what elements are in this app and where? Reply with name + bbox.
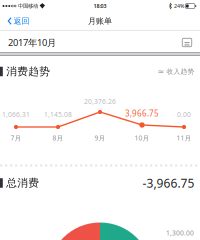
button[interactable]: 返回: [0, 12, 35, 30]
staticText: 3,966.75: [125, 108, 159, 119]
staticText: 收入趋势: [166, 67, 194, 76]
staticText: 18:03: [93, 2, 106, 10]
staticText: 9月: [94, 134, 105, 142]
staticText: -3,966.75: [142, 175, 194, 191]
staticText: 7月: [10, 134, 21, 142]
staticText: 1,066.31: [2, 110, 30, 119]
staticText: 总消费: [6, 176, 39, 189]
staticText: 2017年10月: [8, 36, 56, 49]
staticText: 1,300.00: [166, 229, 194, 237]
staticText: 8月: [52, 134, 63, 142]
button[interactable]: Pick month: [179, 35, 195, 49]
staticText: 24%: [174, 2, 184, 10]
staticText: 20,376.26: [84, 97, 116, 106]
staticText: 0.00: [177, 110, 191, 119]
staticText: 10月: [134, 134, 149, 142]
staticText: 月账单: [88, 16, 112, 26]
staticText: 中国移动: [16, 3, 38, 9]
staticText: 返回: [13, 16, 29, 26]
staticText: 1,145.08: [44, 110, 72, 119]
staticText: ≈: [157, 67, 164, 76]
staticText: 消费趋势: [6, 65, 50, 78]
staticText: 11月: [176, 134, 191, 142]
